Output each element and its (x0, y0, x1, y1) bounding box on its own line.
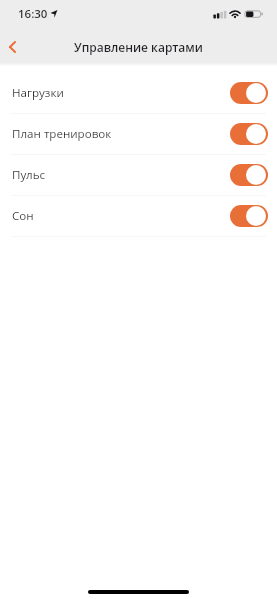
staticText: План тренировок (12, 126, 112, 142)
button[interactable]: Нагрузки (0, 73, 277, 114)
button[interactable]: Toggle on (230, 205, 268, 227)
staticText: Пульс (12, 167, 46, 183)
button[interactable]: Сон (0, 196, 277, 237)
button[interactable]: Toggle on (230, 164, 268, 186)
staticText: Сон (12, 208, 34, 224)
button[interactable]: Toggle on (230, 82, 268, 104)
staticText: Управление картами (74, 39, 203, 55)
button[interactable]: Toggle on (230, 123, 268, 145)
button[interactable]: Back (0, 31, 24, 63)
staticText: Нагрузки (12, 85, 64, 101)
staticText: 16:30 (18, 6, 48, 22)
button[interactable]: План тренировок (0, 114, 277, 155)
button[interactable]: Пульс (0, 155, 277, 196)
